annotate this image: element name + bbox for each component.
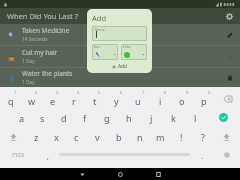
staticText: 1 [14,90,17,95]
button[interactable]: l [184,108,206,127]
button[interactable]: x [46,127,66,146]
button[interactable]: Space [59,146,190,163]
button[interactable]: 0 [193,90,215,108]
button[interactable]: 6 [105,90,127,108]
staticText: Add [118,63,127,70]
button[interactable]: ? [192,127,213,146]
button[interactable]: z [26,127,46,146]
staticText: j [150,112,153,124]
button[interactable]: Taken Medicine [0,24,240,45]
button[interactable]: g [96,108,118,127]
staticText: 1 Day [22,79,35,86]
staticText: ? [201,131,205,143]
staticText: Water the plants [22,69,73,78]
button[interactable]: d [53,108,74,127]
staticText: 5 [98,90,101,95]
staticText: 1 Day [22,58,35,65]
button[interactable]: 4 [63,90,84,108]
staticText: m [156,131,165,143]
button[interactable]: Settings [223,10,236,23]
button[interactable]: Shift right [213,127,240,146]
staticText: 4 [77,90,80,95]
button[interactable]: , [36,146,59,163]
staticText: i [159,95,162,107]
staticText: Name [95,27,105,32]
button[interactable]: 2 [21,90,42,108]
staticText: . [201,152,203,162]
button[interactable]: s [32,108,53,127]
button[interactable]: Recent apps [147,168,169,180]
button[interactable]: Shift [0,127,26,146]
button[interactable]: Color [121,44,147,60]
staticText: t [93,95,97,107]
staticText: y [114,95,119,107]
button[interactable]: n [129,127,150,146]
button[interactable]: v [87,127,108,146]
staticText: 6 [120,90,123,95]
staticText: 8 [164,90,167,95]
button[interactable]: a [11,108,32,127]
button[interactable]: Edit [224,29,236,41]
staticText: Taken Medicine [22,26,70,35]
staticText: u [135,95,141,107]
button[interactable]: Back [71,168,93,180]
staticText: d [61,112,67,124]
staticText: l [194,112,197,124]
button[interactable]: 5 [84,90,105,108]
button[interactable]: 7 [127,90,149,108]
staticText: , [47,152,49,162]
staticText: p [201,95,207,107]
staticText: ! [180,131,183,143]
staticText: 0 [208,90,211,95]
staticText: w [28,95,36,107]
staticText: ?123 [12,151,24,158]
staticText: c [74,131,79,143]
staticText: o [179,95,185,107]
staticText: Color [123,45,132,49]
staticText: 3 [56,90,59,95]
button[interactable]: k [162,108,184,127]
button[interactable]: 1 [0,90,21,108]
button[interactable]: Icon [92,44,118,60]
button[interactable]: ! [171,127,192,146]
button[interactable]: 3 [42,90,63,108]
button[interactable]: Enter [206,108,240,127]
button[interactable]: ?123 [0,146,36,163]
button[interactable]: Water the plants [0,68,240,87]
staticText: Add [92,13,107,23]
button[interactable]: f [74,108,96,127]
staticText: s [40,112,45,124]
staticText: e [50,95,56,107]
staticText: h [126,112,132,124]
staticText: n [137,131,143,143]
staticText: v [95,131,100,143]
button[interactable]: 8 [149,90,171,108]
staticText: z [34,131,39,143]
staticText: f [83,112,87,124]
staticText: g [104,112,110,124]
staticText: 9 [186,90,189,95]
button[interactable]: Add [111,62,128,71]
button[interactable]: . [190,146,213,163]
staticText: r [72,95,76,107]
staticText: b [116,131,122,143]
button[interactable]: j [140,108,162,127]
button[interactable]: 9 [171,90,193,108]
staticText: Cut my hair [22,48,58,57]
staticText: Icon [94,45,101,49]
button[interactable]: b [108,127,129,146]
staticText: 2 [35,90,38,95]
button[interactable]: Backspace [215,90,240,108]
button[interactable]: Cut my hair [0,46,240,67]
button[interactable]: Delete [224,72,236,84]
button[interactable]: Home [109,168,131,180]
button[interactable]: Emoji [213,146,240,163]
button[interactable]: h [118,108,140,127]
button[interactable]: c [66,127,87,146]
button[interactable]: Name [92,26,147,41]
button[interactable]: m [150,127,171,146]
staticText: 14 Seconds [22,36,48,43]
staticText: a [19,112,25,124]
staticText: q [8,95,14,107]
